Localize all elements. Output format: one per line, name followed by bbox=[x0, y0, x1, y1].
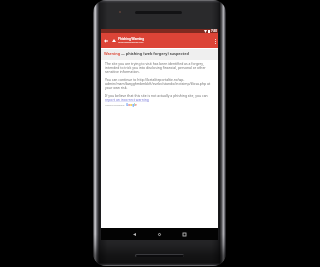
button[interactable]: Home bbox=[153, 228, 165, 240]
staticText: Google bbox=[126, 103, 137, 107]
staticText: Warning — phishing (web forgery) suspect… bbox=[104, 51, 189, 56]
staticText: 7:30 bbox=[211, 29, 217, 33]
staticText: Advisory provided by bbox=[105, 104, 125, 107]
staticText: Phishing Warning bbox=[118, 37, 145, 41]
button[interactable]: Back bbox=[128, 228, 140, 240]
staticText: You can continue to http://betaliteporta… bbox=[105, 77, 211, 90]
staticText: https://www.google.com bbox=[118, 41, 144, 44]
button[interactable]: Back bbox=[101, 35, 110, 46]
button[interactable]: More options bbox=[212, 35, 218, 47]
button[interactable]: Recent apps bbox=[178, 228, 190, 240]
button[interactable]: If you believe that this site is not act… bbox=[105, 93, 208, 102]
staticText: The site you are trying to visit has bee… bbox=[105, 61, 213, 74]
